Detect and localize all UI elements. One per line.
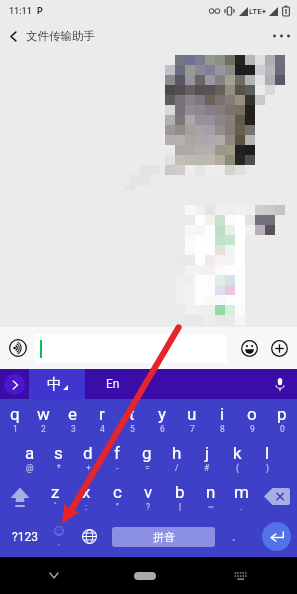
button[interactable]: n <box>195 477 226 516</box>
staticText: v <box>144 482 153 502</box>
button[interactable]: 拼音 <box>112 527 215 547</box>
staticText: 1 <box>13 424 18 434</box>
button[interactable]: u <box>177 399 207 438</box>
staticText: y <box>158 404 167 424</box>
staticText: 0 <box>280 424 285 434</box>
staticText: x <box>82 482 91 502</box>
button[interactable]: i <box>207 399 237 438</box>
button[interactable]: f <box>102 438 132 477</box>
staticText: h <box>172 443 182 463</box>
staticText: j <box>205 443 210 463</box>
staticText: 6 <box>160 424 165 434</box>
button[interactable]: Emoji keyboard <box>50 516 67 557</box>
button[interactable]: o <box>237 399 267 438</box>
button[interactable]: Hide keyboard, go back <box>0 557 107 594</box>
staticText: u <box>187 404 197 424</box>
staticText: n <box>206 482 216 502</box>
button[interactable]: p <box>267 399 297 438</box>
staticText: | <box>179 502 182 512</box>
button[interactable]: Back <box>0 22 26 50</box>
button[interactable]: Emoji <box>235 334 263 362</box>
button[interactable]: t <box>117 399 147 438</box>
button[interactable]: m <box>226 477 257 516</box>
staticText: f <box>114 443 120 463</box>
staticText: 7 <box>190 424 195 434</box>
staticText: + <box>86 463 91 473</box>
staticText: # <box>204 463 210 473</box>
staticText: : <box>85 502 88 512</box>
button[interactable]: Shift <box>0 477 40 516</box>
staticText: ?123 <box>12 530 38 544</box>
staticText: 8 <box>220 424 225 434</box>
staticText: * <box>57 463 61 473</box>
button[interactable]: z <box>40 477 71 516</box>
staticText: o <box>247 404 257 424</box>
button[interactable]: g <box>132 438 162 477</box>
staticText: En <box>106 377 120 391</box>
staticText: 9 <box>250 424 255 434</box>
button[interactable] <box>34 334 227 363</box>
staticText: 3 <box>71 424 76 434</box>
staticText: e <box>68 404 78 424</box>
button[interactable]: More functions <box>265 334 293 362</box>
button[interactable]: h <box>162 438 192 477</box>
staticText: = <box>145 463 150 473</box>
button[interactable]: Switch keyboard <box>183 557 297 594</box>
button[interactable]: 文件传输助手 <box>26 29 95 43</box>
button[interactable]: l <box>252 438 282 477</box>
button[interactable]: v <box>133 477 164 516</box>
staticText: . <box>240 502 243 512</box>
button[interactable]: q <box>0 399 29 438</box>
staticText: 拼音 <box>153 530 175 544</box>
button[interactable]: w <box>29 399 58 438</box>
staticText: t <box>129 404 135 424</box>
staticText: 2 <box>41 424 46 434</box>
staticText: 11:11 <box>9 6 32 17</box>
button[interactable]: ?123 <box>0 516 50 557</box>
button[interactable]: Change language <box>67 516 112 557</box>
staticText: P <box>37 6 43 17</box>
staticText: g <box>142 443 152 463</box>
staticText: w <box>37 404 50 424</box>
staticText: LTE+ <box>249 7 267 16</box>
button[interactable]: Home <box>107 557 183 594</box>
button[interactable]: 中 <box>29 369 85 399</box>
staticText: ? <box>146 502 151 512</box>
staticText: 文件传输助手 <box>26 29 95 43</box>
staticText: ) <box>266 463 269 473</box>
staticText: ~ <box>208 502 214 512</box>
staticText: s <box>54 443 63 463</box>
button[interactable]: Expand toolbar <box>0 369 29 399</box>
button[interactable]: d <box>73 438 102 477</box>
button[interactable]: En <box>85 369 141 399</box>
button[interactable]: e <box>58 399 87 438</box>
button[interactable]: Voice typing <box>263 369 297 399</box>
staticText: q <box>10 404 20 424</box>
button[interactable]: More options <box>265 22 297 50</box>
button[interactable]: j <box>192 438 222 477</box>
staticText: i <box>220 404 225 424</box>
button[interactable]: Voice input <box>6 336 30 360</box>
button[interactable]: r <box>87 399 117 438</box>
staticText: ( <box>236 463 239 473</box>
button[interactable]: s <box>44 438 73 477</box>
button[interactable]: y <box>147 399 177 438</box>
staticText: b <box>175 482 185 502</box>
staticText: l <box>265 443 270 463</box>
staticText: / <box>175 463 179 473</box>
button[interactable]: a <box>15 438 44 477</box>
button[interactable]: Backspace <box>257 477 297 516</box>
staticText: , <box>58 538 60 547</box>
staticText: 5 <box>130 424 135 434</box>
staticText: r <box>99 404 105 424</box>
button[interactable]: 。 <box>215 516 256 557</box>
staticText: k <box>233 443 242 463</box>
staticText: 4 <box>100 424 105 434</box>
staticText: z <box>51 482 60 502</box>
button[interactable]: x <box>71 477 102 516</box>
button[interactable]: b <box>164 477 195 516</box>
button[interactable]: c <box>102 477 133 516</box>
button[interactable]: Enter <box>256 516 297 557</box>
button[interactable]: k <box>222 438 252 477</box>
staticText: 。 <box>232 532 240 542</box>
